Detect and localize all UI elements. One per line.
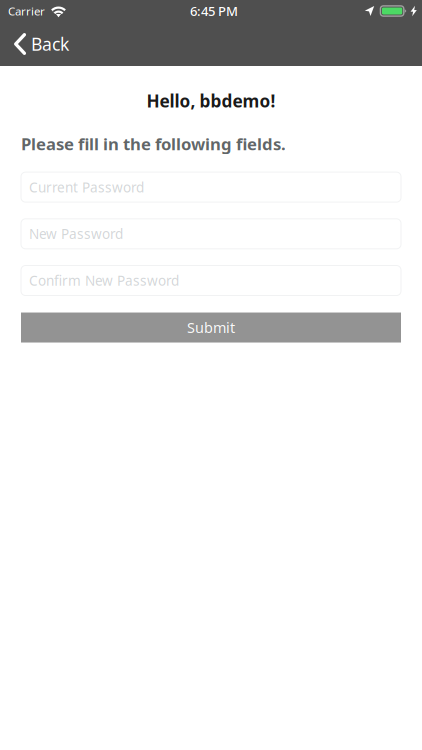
staticText: Confirm New Password <box>29 271 179 290</box>
staticText: Back <box>31 32 69 56</box>
staticText: 6:45 PM <box>190 2 238 20</box>
staticText: Current Password <box>29 178 144 196</box>
button[interactable]: New Password <box>21 219 401 249</box>
staticText: Hello, bbdemo! <box>146 89 275 112</box>
button[interactable]: Current Password <box>21 172 401 202</box>
staticText: Please fill in the following fields. <box>21 132 286 155</box>
button[interactable]: Confirm New Password <box>21 265 401 295</box>
staticText: Carrier <box>8 3 45 19</box>
button[interactable]: Submit <box>21 312 401 342</box>
staticText: Submit <box>187 318 235 337</box>
staticText: New Password <box>29 225 123 243</box>
button[interactable]: Back <box>0 22 81 66</box>
